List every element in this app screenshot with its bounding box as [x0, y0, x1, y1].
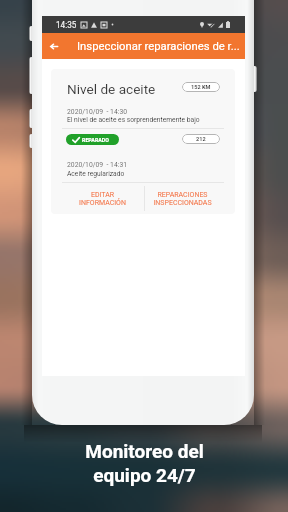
staticText: 212	[196, 136, 206, 143]
staticText: REPARACIONES INSPECCIONADAS	[153, 191, 212, 207]
staticText: El nivel de aceite es sorprendentemente …	[67, 116, 200, 124]
button[interactable]: REPARACIONES INSPECCIONADAS	[143, 183, 235, 214]
staticText: EDITAR INFORMACIÓN	[79, 191, 126, 207]
button[interactable]: Back	[42, 33, 66, 59]
staticText: 14:35	[56, 20, 77, 30]
button[interactable]: REPARADO	[66, 134, 119, 145]
staticText: Nivel de aceite	[67, 81, 156, 97]
staticText: 152 KM	[191, 84, 211, 91]
staticText: Inspeccionar reparaciones de r...	[77, 40, 240, 53]
staticText: equipo 24/7	[93, 464, 196, 486]
staticText: 2020/10/09 - 14:31	[67, 161, 128, 169]
button[interactable]: 212	[182, 134, 220, 144]
button[interactable]: EDITAR INFORMACIÓN	[51, 183, 143, 214]
staticText: Aceite regularizado	[67, 170, 125, 178]
staticText: Monitoreo del	[85, 440, 204, 462]
button[interactable]: 152 KM	[182, 82, 220, 92]
staticText: REPARADO	[82, 137, 109, 143]
staticText: 2020/10/09 - 14:30	[67, 108, 128, 116]
